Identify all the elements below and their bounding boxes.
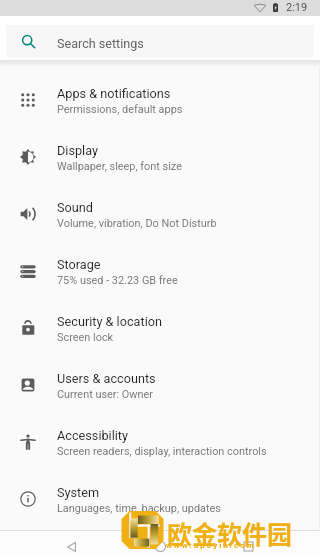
- button[interactable]: Accessibility: [0, 413, 320, 470]
- staticText: w w w . a p o y i n . c o m: [166, 541, 254, 550]
- staticText: Apps & notifications: [57, 86, 171, 101]
- staticText: Screen readers, display, interaction con…: [57, 445, 267, 458]
- staticText: Storage: [57, 257, 101, 272]
- staticText: 2:19: [286, 1, 308, 14]
- staticText: Wallpaper, sleep, font size: [57, 160, 182, 173]
- staticText: Security & location: [57, 314, 162, 329]
- button[interactable]: Apps & notifications: [0, 71, 320, 128]
- staticText: Permissions, default apps: [57, 103, 183, 116]
- staticText: System: [57, 485, 100, 500]
- staticText: Display: [57, 143, 98, 158]
- button[interactable]: Storage: [0, 242, 320, 299]
- button[interactable]: Sound: [0, 185, 320, 242]
- staticText: Volume, vibration, Do Not Disturb: [57, 217, 217, 230]
- button[interactable]: Home: [146, 534, 175, 556]
- button[interactable]: Search settings: [6, 25, 314, 57]
- button[interactable]: Back: [57, 534, 86, 556]
- button[interactable]: Security & location: [0, 299, 320, 356]
- staticText: Search settings: [57, 36, 144, 51]
- staticText: 欧金软件园: [167, 515, 293, 551]
- button[interactable]: Users & accounts: [0, 356, 320, 413]
- staticText: Languages, time, backup, updates: [57, 502, 221, 515]
- button[interactable]: Recents: [234, 534, 263, 556]
- staticText: Accessibility: [57, 428, 129, 443]
- button[interactable]: Display: [0, 128, 320, 185]
- staticText: 75% used - 32.23 GB free: [57, 274, 178, 287]
- staticText: Screen lock: [57, 331, 114, 344]
- staticText: Sound: [57, 200, 93, 215]
- staticText: Current user: Owner: [57, 388, 154, 401]
- staticText: Users & accounts: [57, 371, 156, 386]
- button[interactable]: System: [0, 470, 320, 527]
